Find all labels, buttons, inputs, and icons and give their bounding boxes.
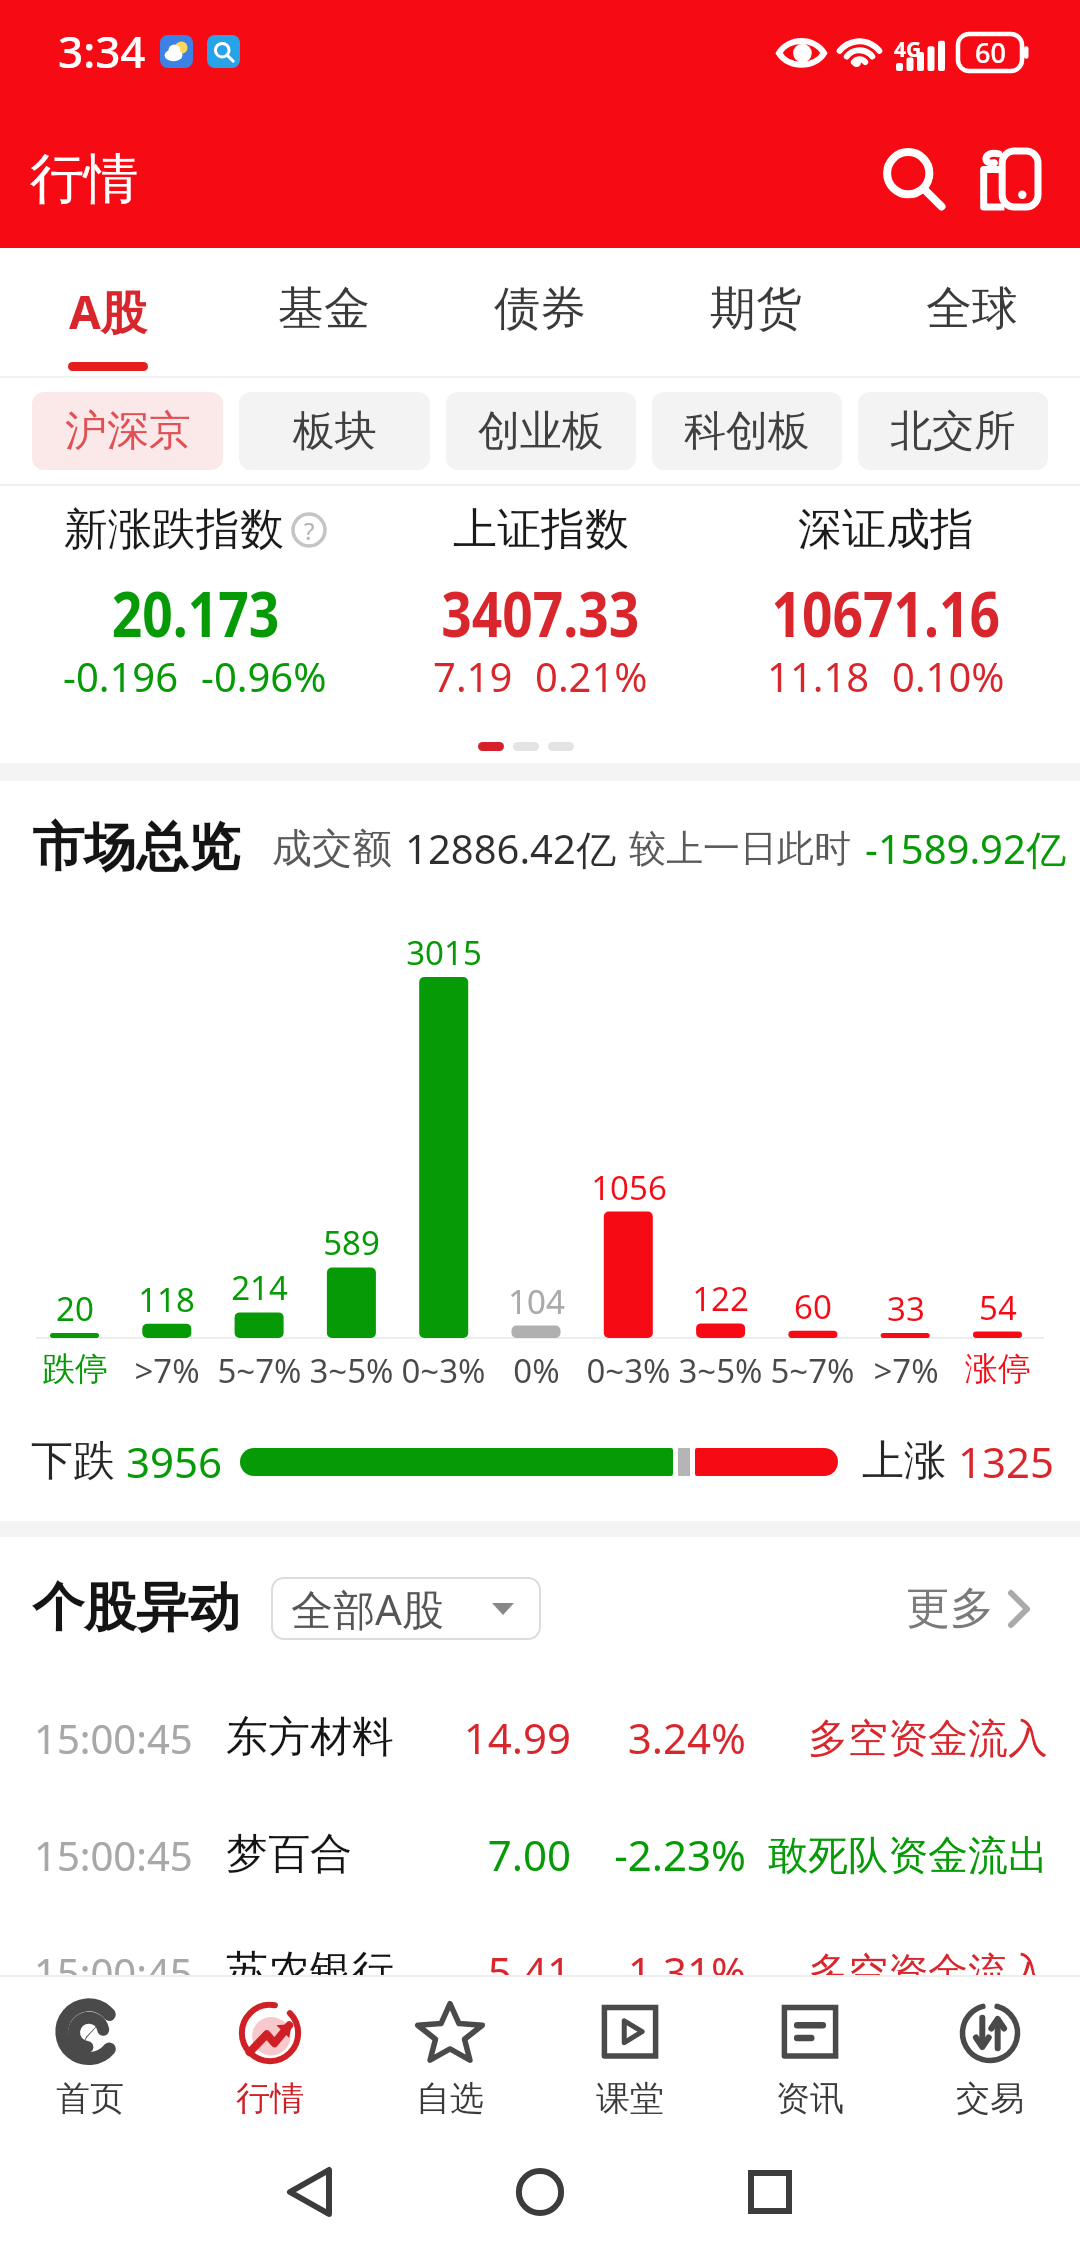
button[interactable]: A股 — [0, 248, 216, 378]
staticText: 3~5% — [309, 1348, 394, 1393]
staticText: 个股异动 — [32, 1575, 240, 1641]
staticText: 122 — [692, 1276, 749, 1321]
staticText: 市场总览 — [32, 815, 240, 881]
button[interactable]: 债券 — [432, 248, 648, 378]
staticText: 板块 — [293, 405, 377, 458]
staticText: 15:00:45 — [34, 1711, 193, 1765]
staticText: -0.96% — [201, 649, 327, 703]
button[interactable]: 首页 — [0, 1977, 180, 2140]
staticText: 债券 — [494, 280, 586, 338]
staticText: 创业板 — [478, 405, 604, 458]
staticText: 60 — [794, 1284, 832, 1329]
staticText: 7.19 — [433, 649, 513, 703]
button[interactable]: 15:00:45 — [0, 1679, 1080, 1796]
staticText: 沪深京 — [65, 405, 191, 458]
staticText: >7% — [873, 1348, 939, 1393]
staticText: 0~3% — [586, 1348, 671, 1393]
staticText: 交易 — [956, 2077, 1024, 2120]
staticText: 资讯 — [776, 2077, 844, 2120]
button[interactable]: 新涨跌指数 — [22, 486, 368, 722]
staticText: 科创板 — [684, 405, 810, 458]
staticText: 多空资金流入 — [808, 1947, 1048, 1997]
button[interactable]: 期货 — [648, 248, 864, 378]
button[interactable]: 上证指数 — [368, 486, 713, 722]
staticText: 589 — [323, 1220, 380, 1265]
staticText: 15:00:45 — [34, 1945, 193, 1999]
button[interactable]: 全球 — [864, 248, 1080, 378]
staticText: -0.196 — [63, 649, 179, 703]
staticText: 118 — [138, 1277, 195, 1322]
staticText: 深证成指 — [798, 502, 974, 557]
staticText: 成交额 — [272, 823, 392, 873]
staticText: 更多 — [906, 1581, 994, 1636]
button[interactable]: 沪深京 — [32, 392, 223, 470]
button[interactable]: 北交所 — [858, 392, 1048, 470]
staticText: 首页 — [56, 2077, 124, 2120]
button[interactable]: 科创板 — [652, 392, 842, 470]
staticText: 3956 — [126, 1433, 223, 1490]
staticText: 33 — [887, 1286, 925, 1331]
staticText: 0% — [513, 1348, 560, 1393]
button[interactable]: 课堂 — [540, 1977, 720, 2140]
button[interactable]: Search — [866, 131, 962, 227]
staticText: 4G — [894, 35, 922, 64]
button[interactable]: 自选 — [360, 1977, 540, 2140]
staticText: 苏农银行 — [226, 1945, 394, 1998]
staticText: 全球 — [926, 280, 1018, 338]
staticText: 新涨跌指数 — [64, 502, 284, 557]
staticText: 54 — [979, 1285, 1017, 1330]
button[interactable]: Market detail — [962, 131, 1058, 227]
button[interactable]: 全部A股 — [272, 1578, 540, 1639]
button[interactable]: 基金 — [216, 248, 432, 378]
staticText: 1.31% — [586, 1943, 746, 2000]
staticText: 课堂 — [596, 2077, 664, 2120]
staticText: 20 — [56, 1286, 94, 1331]
staticText: 15:00:45 — [34, 1828, 193, 1882]
button[interactable]: 15:00:45 — [0, 1913, 1080, 2030]
button[interactable]: 交易 — [900, 1977, 1080, 2140]
staticText: 梦百合 — [226, 1828, 352, 1881]
button[interactable]: 板块 — [239, 392, 430, 470]
staticText: 3407.33 — [441, 571, 640, 655]
staticText: 基金 — [278, 280, 370, 338]
staticText: 下跌 — [31, 1435, 115, 1488]
staticText: 11.18 — [767, 649, 870, 703]
staticText: 0.10% — [892, 649, 1005, 703]
staticText: 自选 — [416, 2077, 484, 2120]
staticText: 1056 — [591, 1165, 667, 1210]
staticText: >7% — [134, 1348, 200, 1393]
staticText: 214 — [231, 1265, 288, 1310]
staticText: 3~5% — [678, 1348, 763, 1393]
staticText: 104 — [508, 1279, 565, 1324]
staticText: 14.99 — [411, 1709, 571, 1766]
staticText: ? — [304, 514, 315, 547]
staticText: 行情 — [30, 145, 138, 213]
staticText: 1325 — [958, 1433, 1055, 1490]
staticText: 10671.16 — [772, 571, 1000, 655]
staticText: 东方材料 — [226, 1711, 394, 1764]
button[interactable]: 行情 — [180, 1977, 360, 2140]
button[interactable]: 深证成指 — [713, 486, 1058, 722]
button[interactable]: 更多 — [906, 1581, 1030, 1636]
staticText: 0~3% — [401, 1348, 486, 1393]
staticText: 行情 — [236, 2077, 304, 2120]
button[interactable]: 15:00:45 — [0, 1796, 1080, 1913]
button[interactable]: 创业板 — [446, 392, 636, 470]
staticText: 3015 — [406, 930, 482, 975]
staticText: 60 — [975, 34, 1006, 71]
staticText: 12886.42亿 — [405, 821, 616, 876]
button[interactable]: 资讯 — [720, 1977, 900, 2140]
staticText: -1589.92亿 — [865, 821, 1066, 876]
staticText: -2.23% — [586, 1826, 746, 1883]
staticText: 5.41 — [411, 1943, 571, 2000]
staticText: 3:34 — [58, 21, 146, 81]
staticText: 跌停 — [42, 1348, 108, 1390]
staticText: 北交所 — [890, 405, 1016, 458]
staticText: 涨停 — [965, 1348, 1031, 1390]
staticText: A股 — [69, 280, 147, 343]
staticText: 上涨 — [862, 1435, 946, 1488]
staticText: 5~7% — [217, 1348, 302, 1393]
staticText: 敢死队资金流出 — [768, 1830, 1048, 1880]
staticText: 多空资金流入 — [808, 1713, 1048, 1763]
staticText: 3.24% — [586, 1709, 746, 1766]
